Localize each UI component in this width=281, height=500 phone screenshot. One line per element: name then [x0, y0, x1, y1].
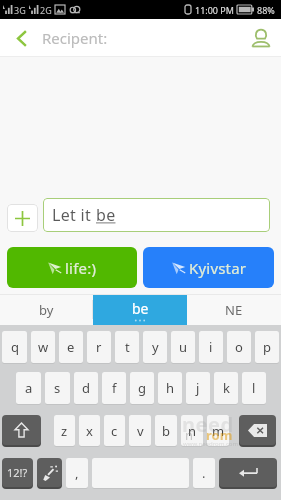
- button[interactable]: Attach: [7, 204, 38, 232]
- button[interactable]: Enter: [219, 458, 277, 487]
- button[interactable]: f: [102, 372, 126, 404]
- button[interactable]: n: [181, 415, 203, 446]
- staticText: Kyivstar: [189, 258, 247, 278]
- staticText: j: [196, 379, 200, 397]
- staticText: f: [112, 379, 117, 397]
- button[interactable]: life:): [7, 247, 137, 288]
- staticText: ,: [75, 464, 79, 482]
- button[interactable]: k: [214, 372, 238, 404]
- button[interactable]: e: [59, 331, 83, 363]
- button[interactable]: c: [104, 415, 125, 446]
- button[interactable]: Symbols: [2, 458, 33, 487]
- staticText: p: [263, 338, 271, 356]
- staticText: life:): [65, 258, 97, 278]
- button[interactable]: Let it: [43, 198, 270, 232]
- staticText: be: [132, 299, 149, 318]
- staticText: 2G: [40, 4, 52, 16]
- staticText: q: [11, 338, 19, 356]
- button[interactable]: a: [16, 372, 41, 404]
- button[interactable]: h: [158, 372, 182, 404]
- staticText: need: [182, 411, 234, 438]
- button[interactable]: Voice input: [37, 458, 62, 487]
- staticText: 12!?: [7, 465, 28, 480]
- button[interactable]: Back: [0, 19, 42, 57]
- button[interactable]: u: [171, 331, 195, 363]
- staticText: be: [96, 204, 116, 226]
- staticText: e: [67, 338, 75, 356]
- button[interactable]: Contacts: [241, 19, 281, 57]
- staticText: .: [202, 464, 206, 482]
- staticText: o: [235, 338, 243, 356]
- staticText: y: [152, 338, 159, 356]
- button[interactable]: .: [193, 458, 215, 488]
- staticText: d: [82, 379, 90, 397]
- button[interactable]: NE: [187, 294, 281, 325]
- button[interactable]: w: [31, 331, 55, 363]
- button[interactable]: o: [227, 331, 251, 363]
- staticText: Recipent:: [42, 28, 108, 48]
- staticText: Let it: [52, 204, 96, 226]
- staticText: a: [25, 379, 33, 397]
- button[interactable]: Shift: [2, 415, 41, 445]
- button[interactable]: by: [0, 294, 93, 325]
- staticText: n: [185, 426, 194, 444]
- button[interactable]: d: [74, 372, 98, 404]
- staticText: u: [179, 338, 188, 356]
- button[interactable]: b: [155, 415, 177, 446]
- staticText: z: [61, 422, 68, 440]
- button[interactable]: p: [255, 331, 279, 363]
- button[interactable]: Backspace: [239, 415, 276, 445]
- button[interactable]: j: [186, 372, 210, 404]
- staticText: k: [223, 379, 230, 397]
- button[interactable]: be: [93, 294, 187, 325]
- staticText: 3G: [14, 4, 26, 16]
- staticText: x: [86, 422, 93, 440]
- staticText: n: [188, 422, 197, 440]
- staticText: 88%: [257, 4, 275, 16]
- button[interactable]: x: [79, 415, 100, 446]
- button[interactable]: t: [115, 331, 139, 363]
- staticText: m: [212, 422, 225, 440]
- staticText: by: [39, 301, 54, 319]
- staticText: NE: [225, 301, 243, 319]
- staticText: w: [38, 338, 49, 356]
- button[interactable]: l: [242, 372, 266, 404]
- button[interactable]: m: [207, 415, 229, 446]
- staticText: t: [125, 338, 130, 356]
- staticText: g: [138, 379, 146, 397]
- button[interactable]: q: [2, 331, 27, 363]
- staticText: r: [96, 338, 102, 356]
- staticText: i: [209, 338, 213, 356]
- button[interactable]: s: [45, 372, 70, 404]
- staticText: 11:00 PM: [195, 4, 234, 16]
- staticText: s: [54, 379, 61, 397]
- button[interactable]: y: [143, 331, 167, 363]
- staticText: h: [166, 379, 175, 397]
- button[interactable]: ,: [66, 458, 88, 488]
- button[interactable]: i: [199, 331, 223, 363]
- staticText: www.needrom.com: [183, 440, 239, 448]
- button[interactable]: r: [87, 331, 111, 363]
- staticText: rom: [206, 426, 233, 444]
- staticText: c: [111, 422, 118, 440]
- staticText: l: [252, 379, 256, 397]
- button[interactable]: v: [129, 415, 151, 446]
- button[interactable]: g: [130, 372, 154, 404]
- staticText: v: [137, 422, 144, 440]
- staticText: b: [162, 422, 170, 440]
- button[interactable]: z: [54, 415, 75, 446]
- button[interactable]: Kyivstar: [143, 247, 274, 288]
